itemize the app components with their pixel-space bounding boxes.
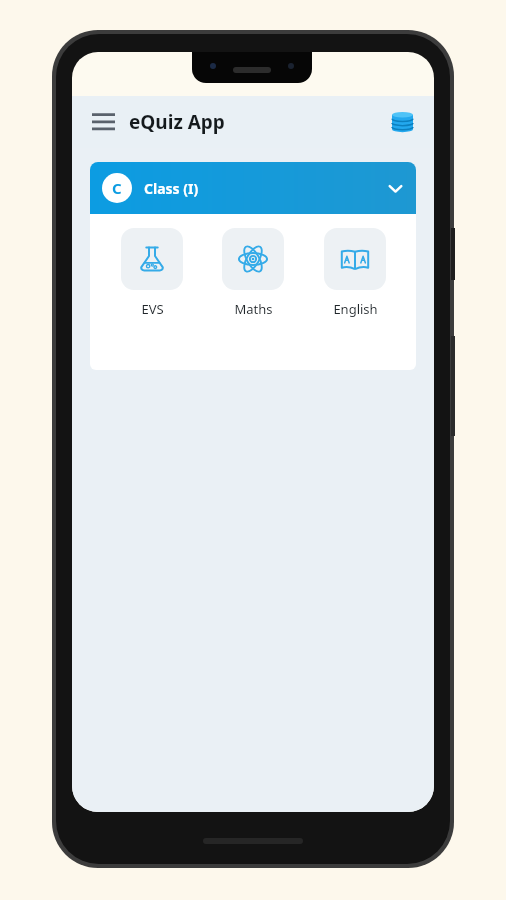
button[interactable]: EVS bbox=[112, 228, 192, 318]
staticText: Maths bbox=[234, 300, 273, 318]
button[interactable]: Maths bbox=[213, 228, 293, 318]
staticText: English bbox=[333, 300, 378, 318]
staticText: C bbox=[112, 178, 122, 198]
button[interactable]: English bbox=[315, 228, 395, 318]
button[interactable]: C bbox=[90, 162, 416, 214]
staticText: eQuiz App bbox=[129, 109, 225, 135]
staticText: Class (I) bbox=[144, 179, 199, 198]
staticText: EVS bbox=[141, 300, 164, 318]
button[interactable]: Open navigation menu bbox=[86, 105, 120, 139]
button[interactable]: Database bbox=[384, 104, 420, 140]
